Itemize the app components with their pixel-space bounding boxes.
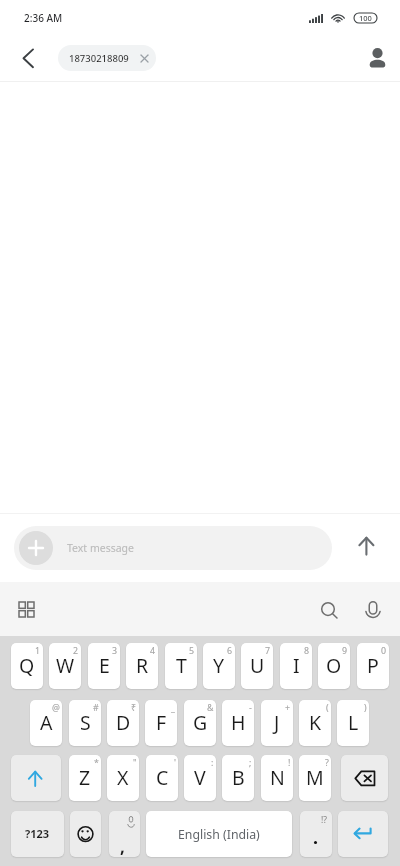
- staticText: R: [136, 652, 149, 679]
- button[interactable]: L: [337, 700, 369, 746]
- staticText: -: [249, 702, 252, 714]
- staticText: U: [250, 652, 265, 679]
- staticText: !: [288, 757, 291, 769]
- button[interactable]: T: [165, 643, 197, 689]
- button[interactable]: V: [184, 755, 216, 801]
- staticText: G: [193, 709, 208, 736]
- staticText: ;: [249, 757, 252, 769]
- staticText: F: [156, 709, 167, 736]
- button[interactable]: Q: [11, 643, 43, 689]
- staticText: I: [293, 652, 300, 679]
- button[interactable]: Send: [346, 528, 386, 568]
- staticText: !?: [321, 814, 327, 826]
- staticText: (: [326, 702, 329, 714]
- button[interactable]: 18730218809: [58, 45, 156, 71]
- button[interactable]: Comma: [109, 811, 140, 857]
- staticText: English (India): [178, 826, 260, 843]
- staticText: #: [93, 702, 99, 714]
- button[interactable]: N: [261, 755, 293, 801]
- staticText: 6: [227, 645, 233, 657]
- button[interactable]: O: [318, 643, 350, 689]
- staticText: B: [232, 764, 245, 791]
- staticText: P: [367, 652, 379, 679]
- staticText: 8: [304, 645, 310, 657]
- button[interactable]: W: [49, 643, 81, 689]
- staticText: 4: [150, 645, 156, 657]
- staticText: 3: [112, 645, 118, 657]
- staticText: W: [56, 652, 75, 679]
- button[interactable]: Z: [69, 755, 101, 801]
- button[interactable]: E: [88, 643, 120, 689]
- button[interactable]: I: [280, 643, 312, 689]
- button[interactable]: K: [299, 700, 331, 746]
- staticText: +: [285, 702, 291, 714]
- button[interactable]: C: [146, 755, 178, 801]
- staticText: 9: [342, 645, 348, 657]
- button[interactable]: Backspace: [341, 755, 388, 801]
- button[interactable]: Y: [203, 643, 235, 689]
- staticText: K: [309, 709, 322, 736]
- button[interactable]: Keyboard menu: [9, 592, 43, 626]
- button[interactable]: H: [222, 700, 254, 746]
- staticText: M: [306, 764, 324, 791]
- staticText: C: [156, 764, 169, 791]
- button[interactable]: Back: [8, 38, 48, 78]
- staticText: J: [274, 709, 280, 736]
- button[interactable]: X: [107, 755, 139, 801]
- staticText: &: [207, 702, 214, 714]
- staticText: 0: [381, 645, 387, 657]
- staticText: Z: [79, 764, 91, 791]
- button[interactable]: Text message: [14, 526, 332, 570]
- staticText: 2:36 AM: [24, 11, 63, 25]
- button[interactable]: S: [69, 700, 101, 746]
- staticText: Text message: [67, 541, 134, 555]
- staticText: Y: [213, 652, 225, 679]
- button[interactable]: D: [107, 700, 139, 746]
- staticText: T: [176, 652, 187, 679]
- button[interactable]: Period: [300, 811, 332, 857]
- staticText: 2: [73, 645, 79, 657]
- button[interactable]: G: [184, 700, 216, 746]
- staticText: ": [133, 757, 137, 769]
- staticText: ,: [120, 835, 125, 857]
- staticText: O: [326, 652, 342, 679]
- staticText: N: [270, 764, 285, 791]
- staticText: V: [194, 764, 206, 791]
- staticText: Q: [19, 652, 35, 679]
- button[interactable]: A: [30, 700, 62, 746]
- staticText: H: [231, 709, 246, 736]
- button[interactable]: Shift: [11, 755, 61, 801]
- button[interactable]: B: [222, 755, 254, 801]
- button[interactable]: Voice input: [356, 592, 390, 626]
- staticText: ': [174, 757, 176, 769]
- staticText: ?: [325, 757, 329, 769]
- staticText: X: [117, 764, 129, 791]
- staticText: @: [52, 702, 60, 714]
- staticText: 7: [265, 645, 271, 657]
- button[interactable]: J: [261, 700, 293, 746]
- button[interactable]: M: [299, 755, 331, 801]
- staticText: ): [364, 702, 367, 714]
- staticText: 18730218809: [69, 52, 129, 65]
- button[interactable]: Search: [312, 592, 346, 626]
- button[interactable]: Enter: [338, 811, 388, 857]
- button[interactable]: Symbols: [11, 811, 64, 857]
- staticText: 1: [35, 645, 41, 657]
- button[interactable]: U: [241, 643, 273, 689]
- button[interactable]: Emoji: [70, 811, 101, 857]
- button[interactable]: Space: [146, 811, 292, 857]
- button[interactable]: R: [126, 643, 158, 689]
- staticText: D: [116, 709, 131, 736]
- staticText: S: [80, 709, 91, 736]
- staticText: 5: [189, 645, 195, 657]
- staticText: ₹: [131, 702, 137, 714]
- staticText: 100: [359, 13, 372, 23]
- button[interactable]: P: [357, 643, 389, 689]
- staticText: E: [99, 652, 110, 679]
- staticText: *: [94, 757, 99, 769]
- button[interactable]: F: [145, 700, 177, 746]
- staticText: ?123: [25, 826, 50, 841]
- staticText: :: [211, 757, 214, 769]
- button[interactable]: Contact details: [357, 38, 397, 78]
- staticText: A: [40, 709, 53, 736]
